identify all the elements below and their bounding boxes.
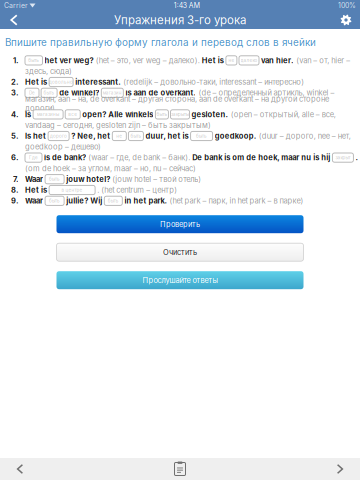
staticText: het ver weg? <box>45 56 94 65</box>
staticText: in het park. <box>124 196 167 205</box>
staticText: 3. <box>11 88 19 97</box>
button[interactable]: Проверить <box>56 215 303 233</box>
staticText: (het – это, ver weg – далеко). <box>96 56 200 65</box>
staticText: далеко <box>240 58 257 63</box>
staticText: (om de hoek – за углом, maar – но, nu – … <box>25 164 196 173</box>
staticText: 5. <box>11 131 19 141</box>
staticText: . (het centrum – центр) <box>97 185 177 195</box>
staticText: goedkoop. <box>215 131 257 141</box>
staticText: здесь, сюда) <box>25 67 72 76</box>
staticText: закрыт <box>335 155 350 160</box>
staticText: . <box>355 153 358 162</box>
staticText: 9. <box>11 196 19 205</box>
staticText: магазин <box>103 90 122 96</box>
staticText: Is het <box>25 131 46 141</box>
staticText: быть <box>28 58 39 63</box>
staticText: jullie? Wij <box>66 196 102 205</box>
staticText: Waar <box>25 175 43 184</box>
staticText: vandaag – сегодня, gesloten zijn – быть … <box>25 121 211 130</box>
staticText: (open – открытый, alle – все, <box>231 110 336 119</box>
staticText: van hier. <box>261 56 294 65</box>
staticText: ? Nee, het <box>71 131 110 141</box>
staticText: Прослушайте ответы <box>142 276 217 285</box>
staticText: Het is <box>25 185 47 195</box>
staticText: gesloten. <box>192 110 229 119</box>
staticText: jouw hotel? <box>66 175 110 184</box>
staticText: быть <box>49 198 60 204</box>
staticText: в центре <box>62 187 83 193</box>
staticText: (het park – парк, in het park – в парке) <box>169 196 303 205</box>
staticText: Впишите правильную форму глагола и перев… <box>5 36 316 48</box>
staticText: быть <box>108 198 119 204</box>
button[interactable]: Прослушайте ответы <box>56 271 303 289</box>
staticText: закрыты <box>171 112 189 117</box>
staticText: is aan de overkant. <box>125 88 196 97</box>
staticText: не <box>116 133 122 139</box>
staticText: interessant. <box>75 77 121 87</box>
staticText: 4. <box>11 110 19 119</box>
button[interactable]: Next page <box>323 458 357 480</box>
staticText: быть <box>44 90 55 96</box>
staticText: Carrier <box>4 1 28 10</box>
staticText: 1:43 AM <box>174 1 200 10</box>
staticText: довольно <box>49 79 73 85</box>
staticText: duur, het is <box>145 131 188 141</box>
staticText: Waar <box>25 196 43 205</box>
staticText: Очистить <box>163 248 197 257</box>
staticText: goedkoop – дешево) <box>25 142 101 151</box>
staticText: (duur – дорого, nee – нет, <box>259 131 351 141</box>
button[interactable]: Очистить <box>56 243 303 261</box>
staticText: Проверить <box>160 220 200 229</box>
staticText: Het is <box>202 56 224 65</box>
staticText: (van – от, hier – <box>296 56 350 65</box>
staticText: Упражнения 3-го урока <box>114 13 246 27</box>
button[interactable]: Previous page <box>3 458 37 480</box>
staticText: быть <box>49 176 60 182</box>
staticText: все <box>68 112 77 117</box>
staticText: 2. <box>11 77 19 87</box>
staticText: de winkel? <box>59 88 99 97</box>
staticText: (waar – где, de bank – банк). <box>88 153 190 162</box>
staticText: 8. <box>11 185 19 195</box>
button[interactable]: Settings <box>332 11 360 29</box>
staticText: дорого <box>50 133 67 139</box>
staticText: 1. <box>13 56 19 65</box>
button[interactable]: Exercise list <box>163 458 197 480</box>
staticText: open? Alle winkels <box>82 110 153 119</box>
staticText: Het is <box>25 77 47 87</box>
staticText: 6. <box>11 153 19 162</box>
staticText: (jouw hotel – твой отель) <box>112 175 201 184</box>
staticText: De bank is om de hoek, maar nu is hij <box>192 153 330 162</box>
staticText: Is <box>25 110 31 119</box>
staticText: Где <box>29 155 38 160</box>
staticText: не <box>228 58 234 63</box>
staticText: быть <box>130 133 141 139</box>
staticText: магазин, aan – на, de overkant – другая … <box>25 94 329 113</box>
staticText: 7. <box>13 175 19 184</box>
staticText: быть <box>196 133 207 139</box>
staticText: быть <box>156 112 167 117</box>
staticText: 100% <box>338 1 356 10</box>
staticText: De <box>29 90 35 96</box>
button[interactable]: Back <box>0 11 28 29</box>
staticText: (redelijk – довольно-таки, interessant –… <box>123 77 304 87</box>
staticText: (de – определенный артикль, winkel – <box>198 88 334 97</box>
staticText: is de bank? <box>44 153 86 162</box>
staticText: магазины <box>37 112 59 117</box>
